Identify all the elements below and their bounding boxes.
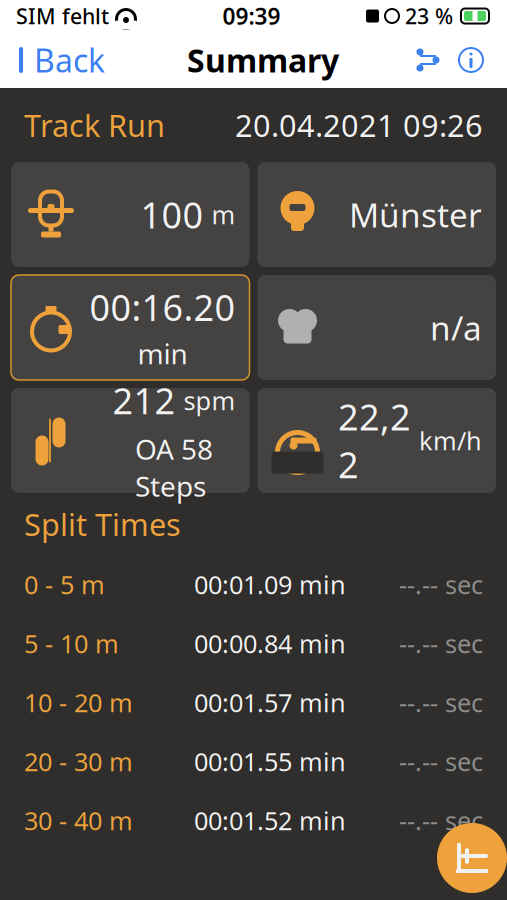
staticText: 23 % [405, 2, 453, 30]
staticText: spm [183, 383, 235, 417]
staticText: --.-- sec [399, 686, 483, 719]
staticText: --.-- sec [399, 568, 483, 601]
staticText: 5 - 10 m [24, 627, 119, 660]
staticText: 00:16.20 [89, 283, 235, 331]
staticText: Split Times [24, 504, 181, 544]
button[interactable]: Info [447, 32, 495, 88]
button[interactable]: Back [0, 32, 119, 88]
button[interactable]: Münster [257, 162, 496, 267]
staticText: 00:00.84 min [194, 627, 346, 660]
button[interactable]: n/a [257, 275, 496, 380]
staticText: m [211, 198, 235, 231]
staticText: 00:01.52 min [194, 804, 346, 837]
staticText: Münster [349, 192, 482, 237]
staticText: km/h [419, 424, 482, 457]
staticText: n/a [430, 305, 482, 350]
staticText: 20.04.2021 09:26 [235, 105, 483, 145]
staticText: --.-- sec [399, 627, 483, 660]
staticText: Track Run [24, 105, 165, 145]
staticText: 09:39 [222, 1, 280, 31]
staticText: SIM fehlt [16, 2, 109, 30]
staticText: 10 - 20 m [24, 686, 133, 719]
button[interactable]: Show chart [437, 823, 507, 893]
staticText: 00:01.09 min [194, 568, 346, 601]
staticText: 00:01.55 min [194, 745, 346, 778]
staticText: 212 [112, 376, 175, 424]
button[interactable]: 22,22 [257, 388, 496, 493]
staticText: 00:01.57 min [194, 686, 346, 719]
staticText: min [137, 335, 187, 372]
button[interactable]: Share [407, 32, 447, 88]
staticText: 100 [140, 191, 203, 238]
staticText: OA 58 Steps [135, 430, 213, 505]
staticText: 30 - 40 m [24, 804, 133, 837]
staticText: --.-- sec [399, 804, 483, 837]
staticText: Back [34, 39, 105, 81]
button[interactable]: 212 [11, 388, 249, 493]
staticText: Summary [187, 39, 339, 81]
staticText: 22,22 [338, 393, 411, 488]
button[interactable]: 100 [11, 162, 249, 267]
staticText: 20 - 30 m [24, 745, 133, 778]
staticText: --.-- sec [399, 745, 483, 778]
button[interactable]: 00:16.20 [11, 275, 249, 380]
staticText: 0 - 5 m [24, 568, 105, 601]
